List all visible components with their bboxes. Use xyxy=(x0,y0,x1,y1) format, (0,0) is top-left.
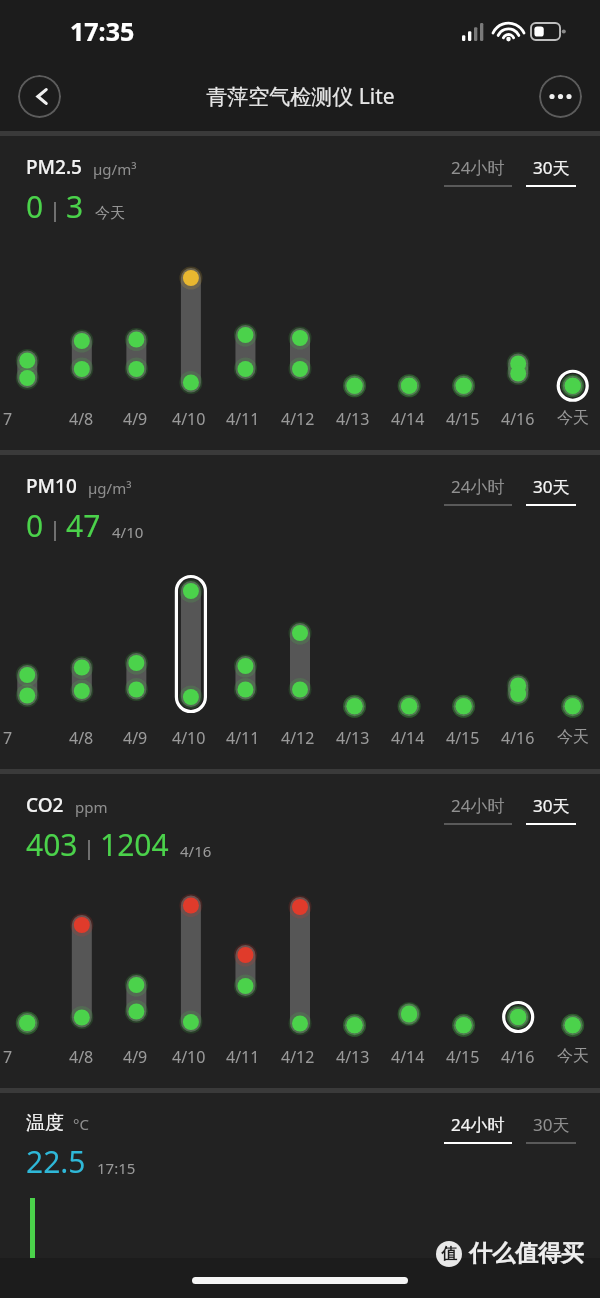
staticText: 什么值得买 xyxy=(469,1239,584,1268)
staticText: 3 xyxy=(66,186,84,227)
staticText: 4/11 xyxy=(226,1046,260,1068)
staticText: 4/15 xyxy=(446,727,480,749)
staticText: 24小时 xyxy=(451,794,505,817)
staticText: 4/13 xyxy=(336,408,370,430)
staticText: 4/15 xyxy=(446,408,480,430)
staticText: 4/14 xyxy=(391,1046,425,1068)
button[interactable]: 24小时 xyxy=(442,156,514,187)
staticText: 4/16 xyxy=(501,727,535,749)
button[interactable]: 30天 xyxy=(524,794,578,825)
button[interactable]: 30天 xyxy=(524,475,578,506)
staticText: PM10 xyxy=(26,473,77,499)
staticText: µg/m³ xyxy=(88,478,132,498)
staticText: 值 xyxy=(441,1244,457,1264)
staticText: 4/8 xyxy=(69,408,94,430)
staticText: 温度 xyxy=(26,1111,64,1135)
staticText: 0 xyxy=(26,505,44,546)
button[interactable]: 24小时 xyxy=(442,1113,514,1144)
button[interactable]: 30天 xyxy=(524,1113,578,1144)
staticText: 30天 xyxy=(533,156,570,179)
staticText: 4/16 xyxy=(180,841,212,861)
staticText: 4/10 xyxy=(172,408,206,430)
staticText: PM2.5 xyxy=(26,154,82,180)
staticText: 4/12 xyxy=(281,727,315,749)
staticText: 4/8 xyxy=(69,727,94,749)
staticText: 今天 xyxy=(95,204,125,223)
staticText: 30天 xyxy=(533,1113,570,1136)
staticText: 青萍空气检测仪 Lite xyxy=(206,82,395,111)
button[interactable]: 24小时 xyxy=(442,475,514,506)
staticText: 4/15 xyxy=(446,1046,480,1068)
staticText: 今天 xyxy=(557,1046,589,1066)
staticText: 4/9 xyxy=(123,408,148,430)
staticText: ppm xyxy=(75,797,108,817)
staticText: 4/11 xyxy=(226,727,260,749)
button[interactable]: Back xyxy=(18,75,61,118)
staticText: 4/10 xyxy=(172,1046,206,1068)
staticText: 4/11 xyxy=(226,408,260,430)
staticText: 4/14 xyxy=(391,408,425,430)
staticText: 30天 xyxy=(533,794,570,817)
button[interactable]: 24小时 xyxy=(442,794,514,825)
staticText: 4/10 xyxy=(112,522,144,542)
staticText: 今天 xyxy=(557,408,589,428)
staticText: 24小时 xyxy=(451,475,505,498)
button[interactable]: More options xyxy=(539,75,582,118)
staticText: 403 xyxy=(26,824,78,865)
staticText: CO2 xyxy=(26,792,64,818)
staticText: 4/9 xyxy=(123,727,148,749)
staticText: °C xyxy=(73,1114,89,1134)
staticText: 4/12 xyxy=(281,408,315,430)
button[interactable]: 30天 xyxy=(524,156,578,187)
staticText: 4/16 xyxy=(501,1046,535,1068)
staticText: 1204 xyxy=(100,824,169,865)
staticText: 24小时 xyxy=(451,1113,505,1136)
staticText: 22.5 xyxy=(26,1141,86,1182)
staticText: 4/8 xyxy=(69,1046,94,1068)
staticText: 24小时 xyxy=(451,156,505,179)
staticText: 7 xyxy=(3,727,13,749)
staticText: 17:35 xyxy=(70,14,135,48)
staticText: 7 xyxy=(3,408,13,430)
staticText: µg/m³ xyxy=(93,159,137,179)
staticText: 17:15 xyxy=(97,1158,136,1178)
staticText: 今天 xyxy=(557,727,589,747)
staticText: 4/12 xyxy=(281,1046,315,1068)
staticText: 4/13 xyxy=(336,1046,370,1068)
staticText: 47 xyxy=(66,505,101,546)
staticText: 4/9 xyxy=(123,1046,148,1068)
staticText: 4/13 xyxy=(336,727,370,749)
staticText: 4/14 xyxy=(391,727,425,749)
staticText: 7 xyxy=(3,1046,13,1068)
staticText: 4/10 xyxy=(172,727,206,749)
staticText: 30天 xyxy=(533,475,570,498)
staticText: 4/16 xyxy=(501,408,535,430)
staticText: 0 xyxy=(26,186,44,227)
